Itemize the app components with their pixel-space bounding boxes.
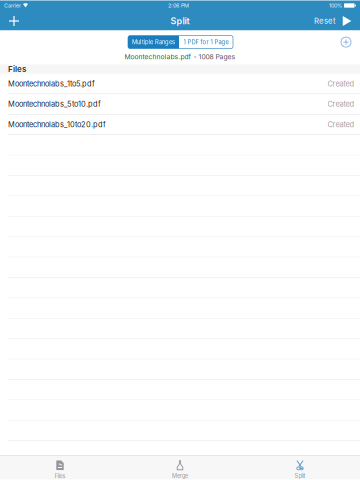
button[interactable]: Add range xyxy=(339,35,353,49)
staticText: Moontechnolabs_5to10.pdf xyxy=(8,100,101,109)
staticText: 100% xyxy=(329,2,342,9)
staticText: Created xyxy=(327,79,354,88)
button[interactable]: Moontechnolabs_1to5.pdf xyxy=(0,74,360,94)
button[interactable]: Moontechnolabs_5to10.pdf xyxy=(0,94,360,115)
staticText: Reset xyxy=(314,16,336,26)
button[interactable]: Reset xyxy=(314,11,336,31)
staticText: 2:06 PM xyxy=(168,2,189,9)
staticText: Files xyxy=(8,64,26,74)
staticText: Created xyxy=(327,120,354,129)
staticText: Split xyxy=(294,473,305,479)
staticText: Moontechnolabs_1to5.pdf xyxy=(8,79,95,88)
button[interactable]: Split xyxy=(240,456,360,479)
button[interactable]: 1 PDF for 1 Page xyxy=(179,36,233,48)
staticText: Moontechnolabs_10to20.pdf xyxy=(8,120,106,129)
staticText: 1 PDF for 1 Page xyxy=(183,39,228,46)
staticText: Moontechnolabs.pdf - 1008 Pages xyxy=(124,53,235,61)
button[interactable]: Multiple Ranges xyxy=(128,36,179,48)
button[interactable]: Split now xyxy=(336,11,358,31)
button[interactable]: Add file xyxy=(0,11,28,31)
button[interactable]: Merge xyxy=(120,456,240,479)
staticText: Split xyxy=(170,15,189,26)
staticText: Created xyxy=(327,100,354,109)
button[interactable]: Files xyxy=(0,456,120,479)
staticText: Files xyxy=(54,473,65,480)
staticText: Carrier xyxy=(4,2,21,9)
staticText: Merge xyxy=(172,473,188,479)
button[interactable]: Moontechnolabs_10to20.pdf xyxy=(0,115,360,135)
staticText: Multiple Ranges xyxy=(132,39,175,46)
